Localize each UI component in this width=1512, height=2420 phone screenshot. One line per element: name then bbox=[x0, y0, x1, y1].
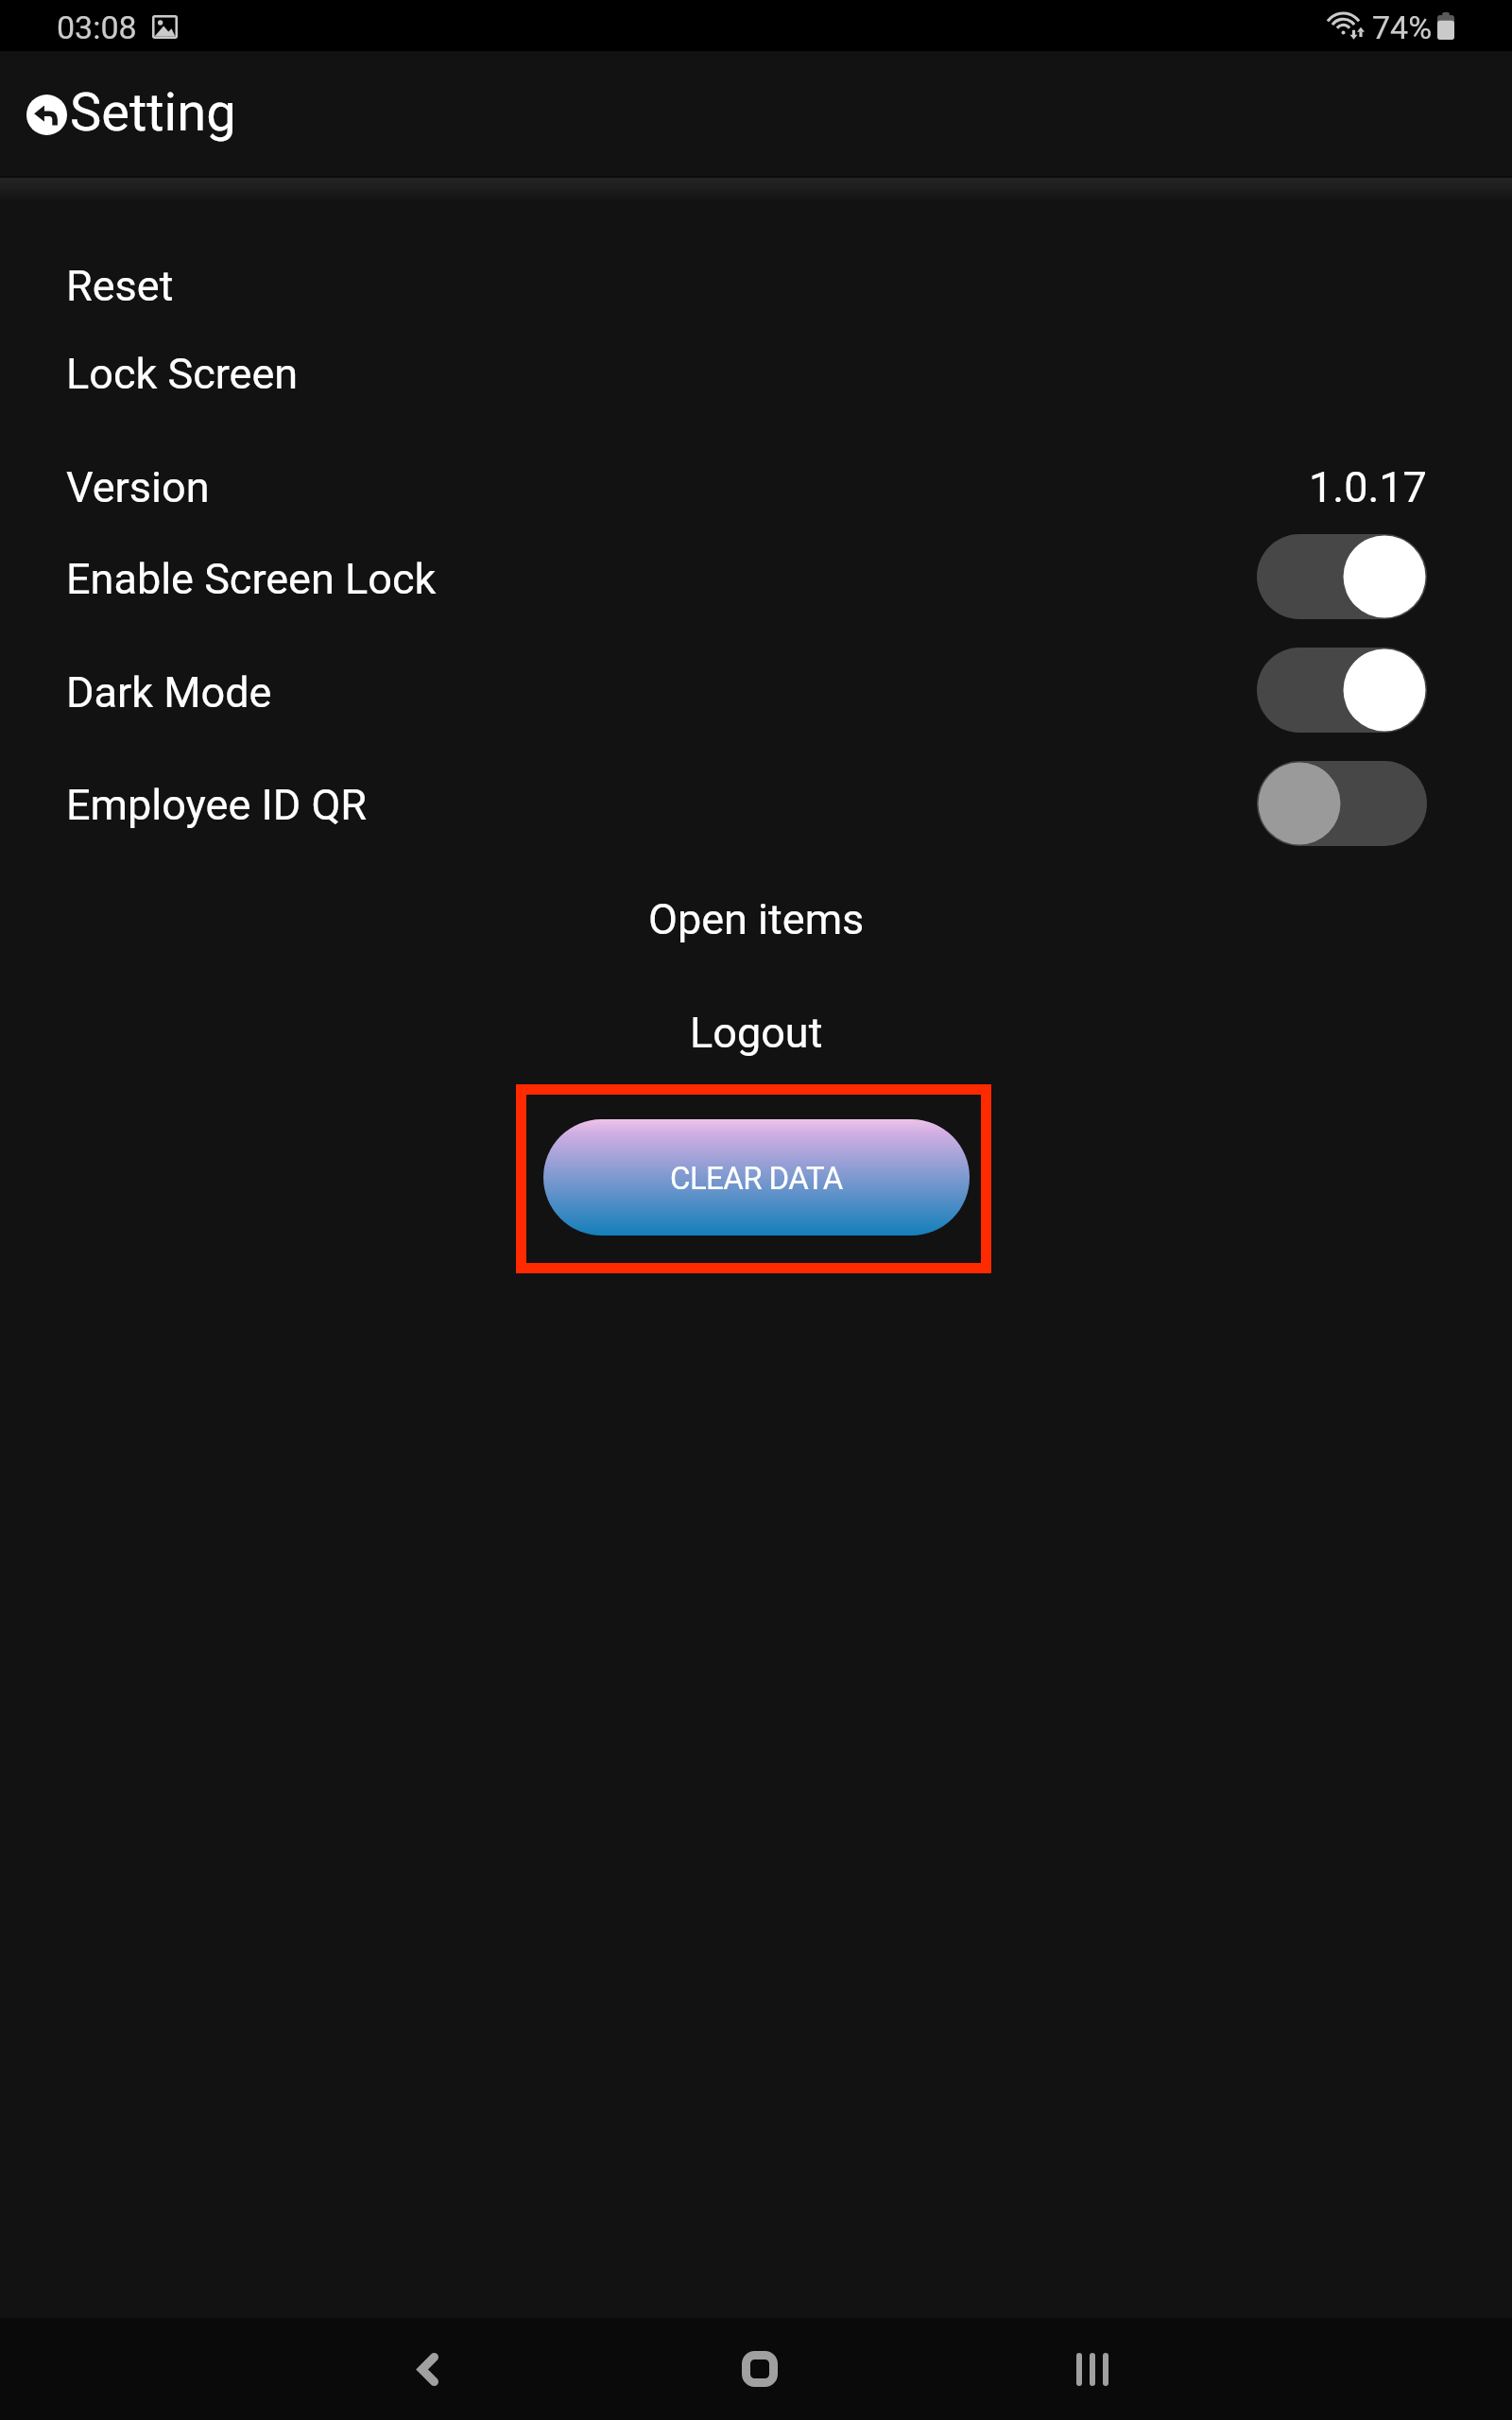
staticText: CLEAR DATA bbox=[670, 1160, 843, 1197]
button[interactable]: Back bbox=[362, 2331, 494, 2407]
button[interactable]: Enable Screen Lock bbox=[1257, 534, 1427, 619]
staticText: Employee ID QR bbox=[66, 780, 368, 830]
button[interactable]: CLEAR DATA bbox=[543, 1119, 970, 1236]
button[interactable]: Back bbox=[26, 83, 233, 146]
staticText: 03:08 bbox=[57, 9, 137, 46]
button[interactable]: Recent apps bbox=[1026, 2331, 1159, 2407]
button[interactable]: Lock Screen bbox=[51, 334, 314, 413]
button[interactable]: Home bbox=[694, 2331, 826, 2407]
staticText: Open items bbox=[648, 894, 865, 944]
staticText: Lock Screen bbox=[66, 349, 299, 399]
staticText: Enable Screen Lock bbox=[66, 554, 437, 604]
button[interactable]: Enable Screen Lock bbox=[0, 534, 1512, 619]
staticText: Version bbox=[66, 462, 210, 512]
button[interactable]: Employee ID QR bbox=[1257, 761, 1427, 846]
staticText: 74% bbox=[1372, 9, 1433, 46]
staticText: Setting bbox=[70, 81, 236, 144]
button[interactable]: Version bbox=[0, 447, 1512, 527]
staticText: Reset bbox=[66, 261, 174, 311]
button[interactable]: Logout bbox=[665, 993, 848, 1072]
button[interactable]: Dark Mode bbox=[1257, 648, 1427, 733]
staticText: Logout bbox=[690, 1008, 823, 1058]
button[interactable]: Employee ID QR bbox=[0, 761, 1512, 846]
button[interactable]: Dark Mode bbox=[0, 648, 1512, 733]
button[interactable]: Reset bbox=[51, 246, 189, 325]
staticText: 1.0.17 bbox=[1309, 462, 1427, 512]
staticText: Dark Mode bbox=[66, 667, 272, 717]
button[interactable]: Open items bbox=[624, 879, 889, 959]
